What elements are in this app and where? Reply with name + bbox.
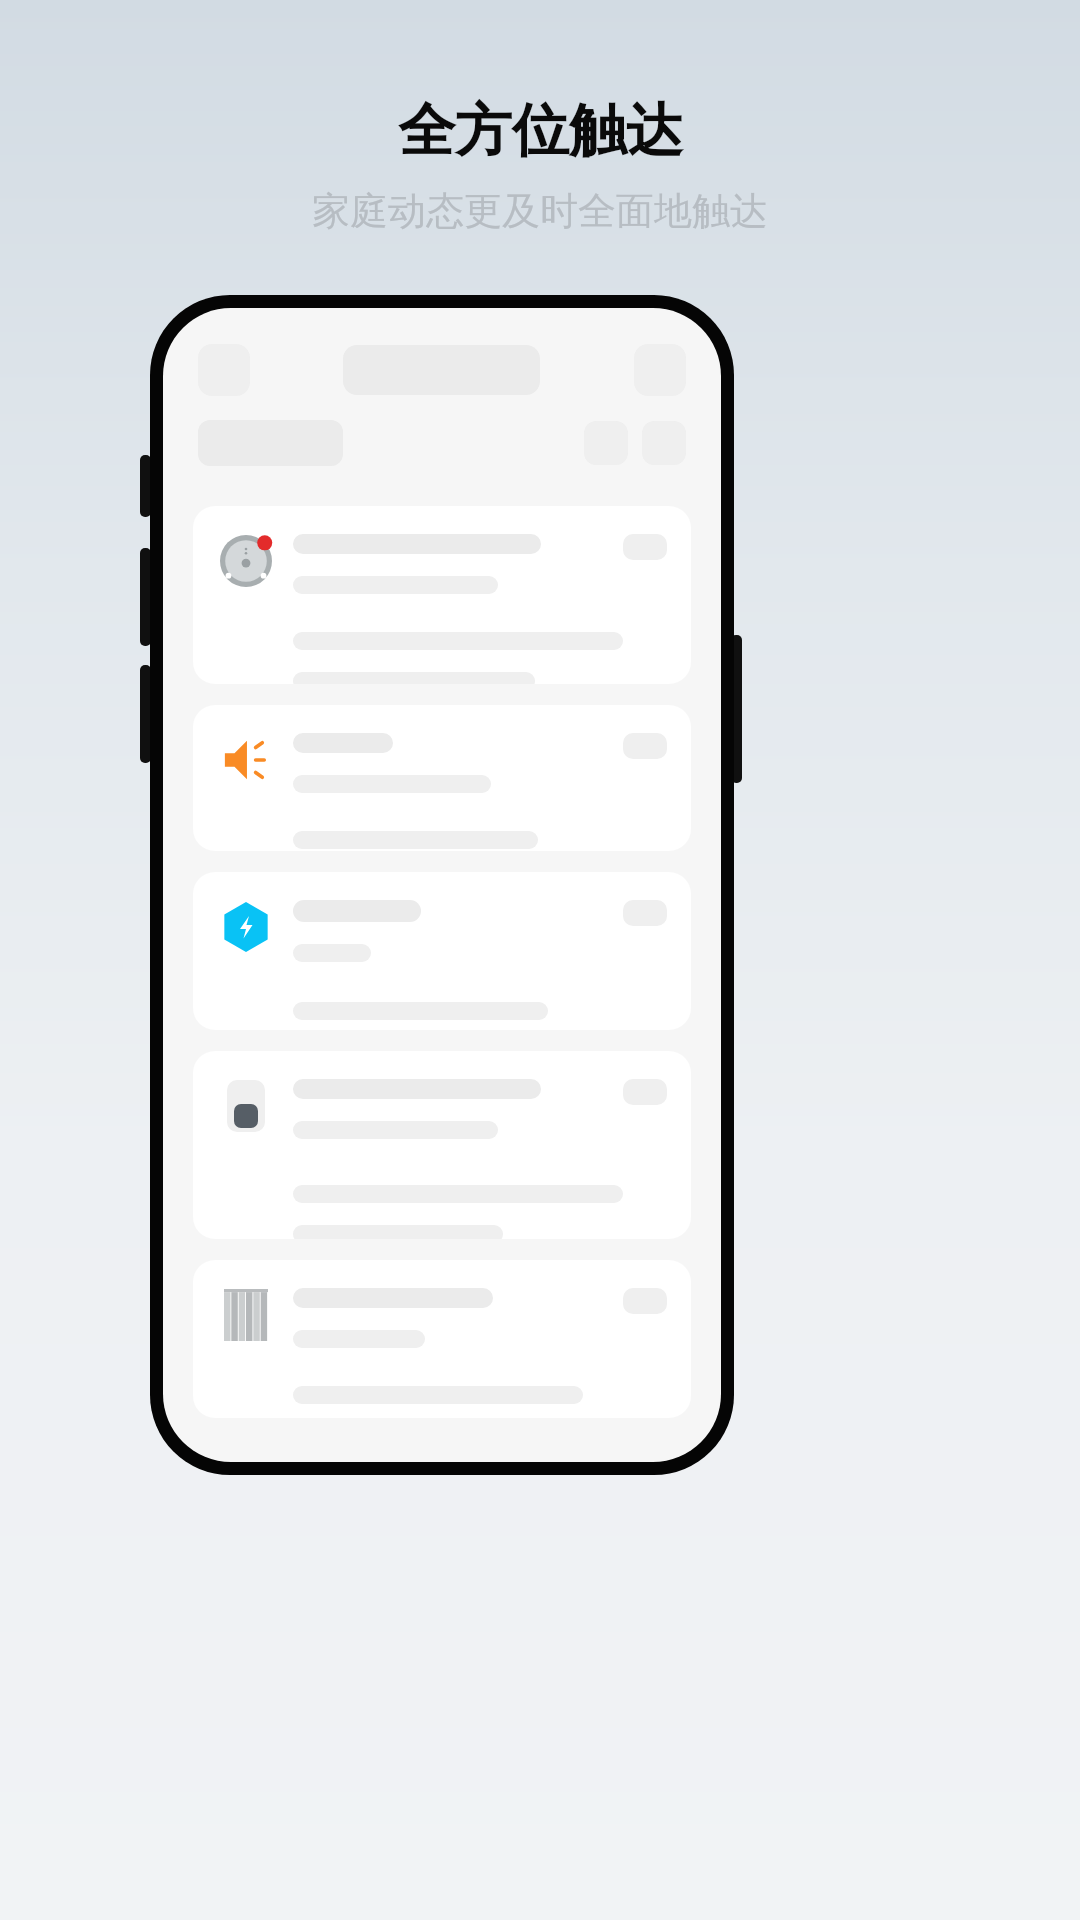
button[interactable]: Speaker — [193, 705, 691, 851]
button[interactable]: Robot vacuum — [193, 506, 691, 684]
staticText: 全方位触达 — [398, 95, 683, 167]
button[interactable]: Switch — [193, 1051, 691, 1239]
staticText: 家庭动态更及时全面地触达 — [312, 187, 768, 235]
button[interactable]: Curtain — [193, 1260, 691, 1418]
button[interactable]: Power — [193, 872, 691, 1030]
